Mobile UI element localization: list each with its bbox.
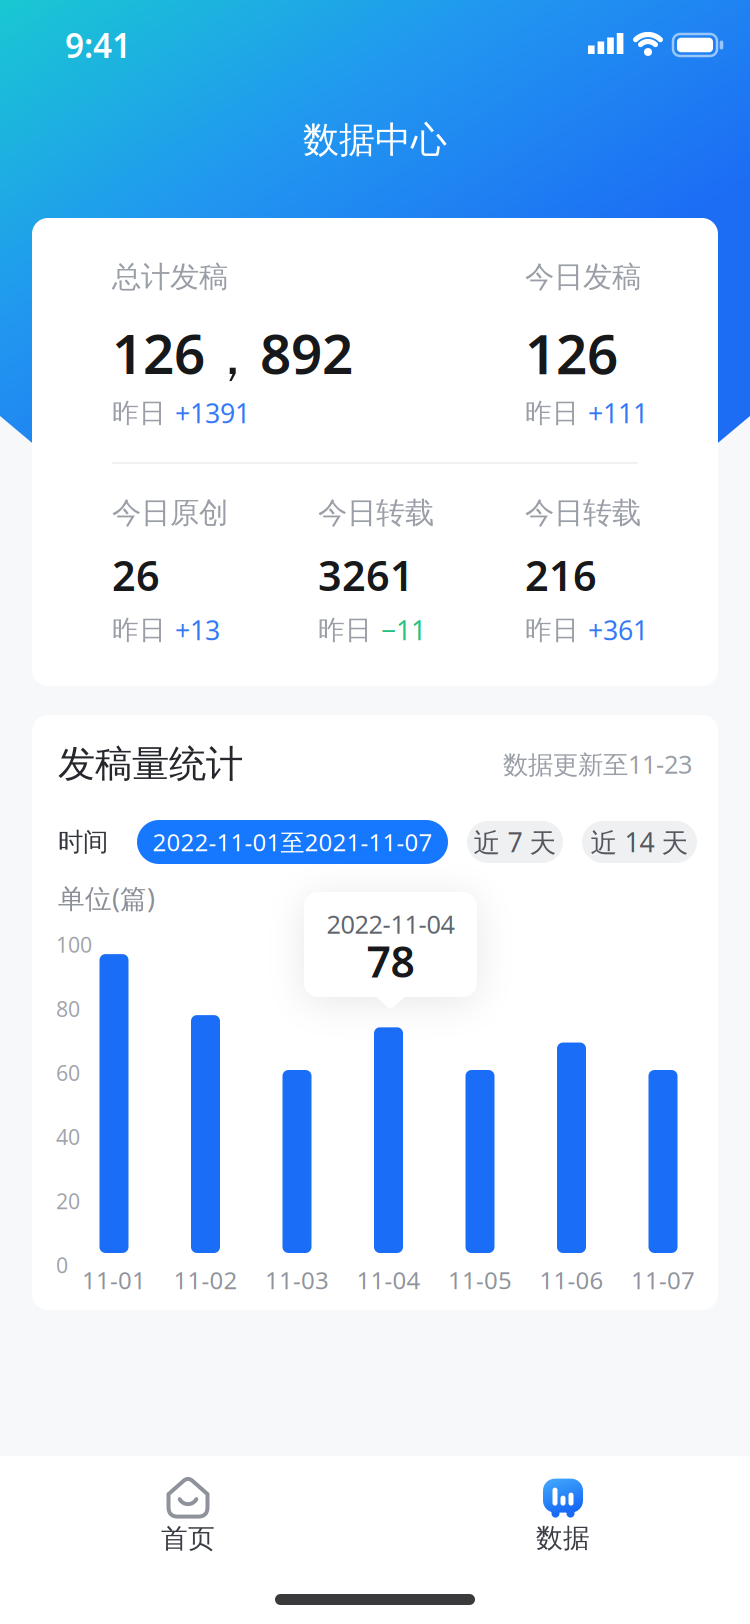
button[interactable]: 首页	[98, 1459, 278, 1569]
staticText: 数据更新至11-23	[503, 747, 692, 781]
staticText: 11-01	[82, 1264, 146, 1296]
staticText: 昨日	[112, 397, 166, 429]
staticText: 40	[56, 1123, 80, 1151]
staticText: 首页	[161, 1522, 215, 1555]
staticText: 11-07	[631, 1264, 695, 1296]
staticText: 单位(篇)	[58, 880, 155, 916]
button[interactable]: 11-06	[557, 1043, 586, 1253]
staticText: 26	[112, 548, 160, 602]
staticText: 数据中心	[303, 118, 447, 162]
staticText: 今日发稿	[525, 259, 641, 295]
staticText: 216	[525, 548, 597, 602]
staticText: 今日原创	[112, 495, 228, 531]
staticText: +361	[588, 612, 648, 648]
staticText: 2022-11-04	[326, 907, 454, 941]
staticText: +111	[588, 395, 648, 431]
button[interactable]: 数据	[473, 1459, 653, 1569]
button[interactable]: 近 7 天	[467, 821, 563, 863]
staticText: 昨日	[318, 614, 372, 646]
staticText: 今日转载	[318, 495, 434, 531]
button[interactable]: 11-01	[99, 954, 128, 1253]
staticText: 昨日	[525, 614, 579, 646]
staticText: +13	[175, 612, 220, 648]
staticText: 总计发稿	[112, 259, 228, 295]
staticText: 60	[56, 1058, 80, 1087]
staticText: 20	[56, 1187, 80, 1215]
staticText: 11-05	[448, 1264, 512, 1296]
staticText: 数据	[536, 1522, 590, 1554]
staticText: 今日转载	[525, 495, 641, 531]
staticText: 100	[56, 930, 92, 959]
staticText: 昨日	[525, 397, 579, 429]
staticText: 0	[56, 1251, 68, 1279]
staticText: 昨日	[112, 614, 166, 646]
button[interactable]: 11-05	[465, 1070, 494, 1253]
staticText: 9:41	[65, 23, 131, 67]
staticText: 80	[56, 994, 80, 1023]
button[interactable]: 11-07	[648, 1070, 677, 1253]
staticText: 126	[525, 317, 618, 389]
staticText: 时间	[58, 826, 108, 857]
staticText: −11	[381, 612, 426, 648]
staticText: 3261	[318, 548, 414, 602]
staticText: 11-04	[356, 1264, 420, 1296]
staticText: 78	[366, 933, 414, 989]
staticText: 11-06	[539, 1264, 603, 1296]
button[interactable]: 11-03	[282, 1070, 311, 1253]
staticText: 126，892	[112, 317, 353, 389]
staticText: 近 14 天	[590, 824, 688, 860]
staticText: +1391	[175, 395, 250, 431]
button[interactable]: 11-02	[191, 1015, 220, 1253]
staticText: 2022-11-01至2021-11-07	[152, 826, 432, 858]
button[interactable]: 11-04	[374, 1027, 403, 1253]
button[interactable]: 2022-11-01至2021-11-07	[137, 820, 448, 864]
staticText: 11-03	[265, 1264, 329, 1296]
button[interactable]: 近 14 天	[582, 821, 697, 863]
staticText: 发稿量统计	[58, 741, 243, 787]
staticText: 近 7 天	[473, 824, 556, 860]
staticText: 11-02	[173, 1264, 237, 1296]
